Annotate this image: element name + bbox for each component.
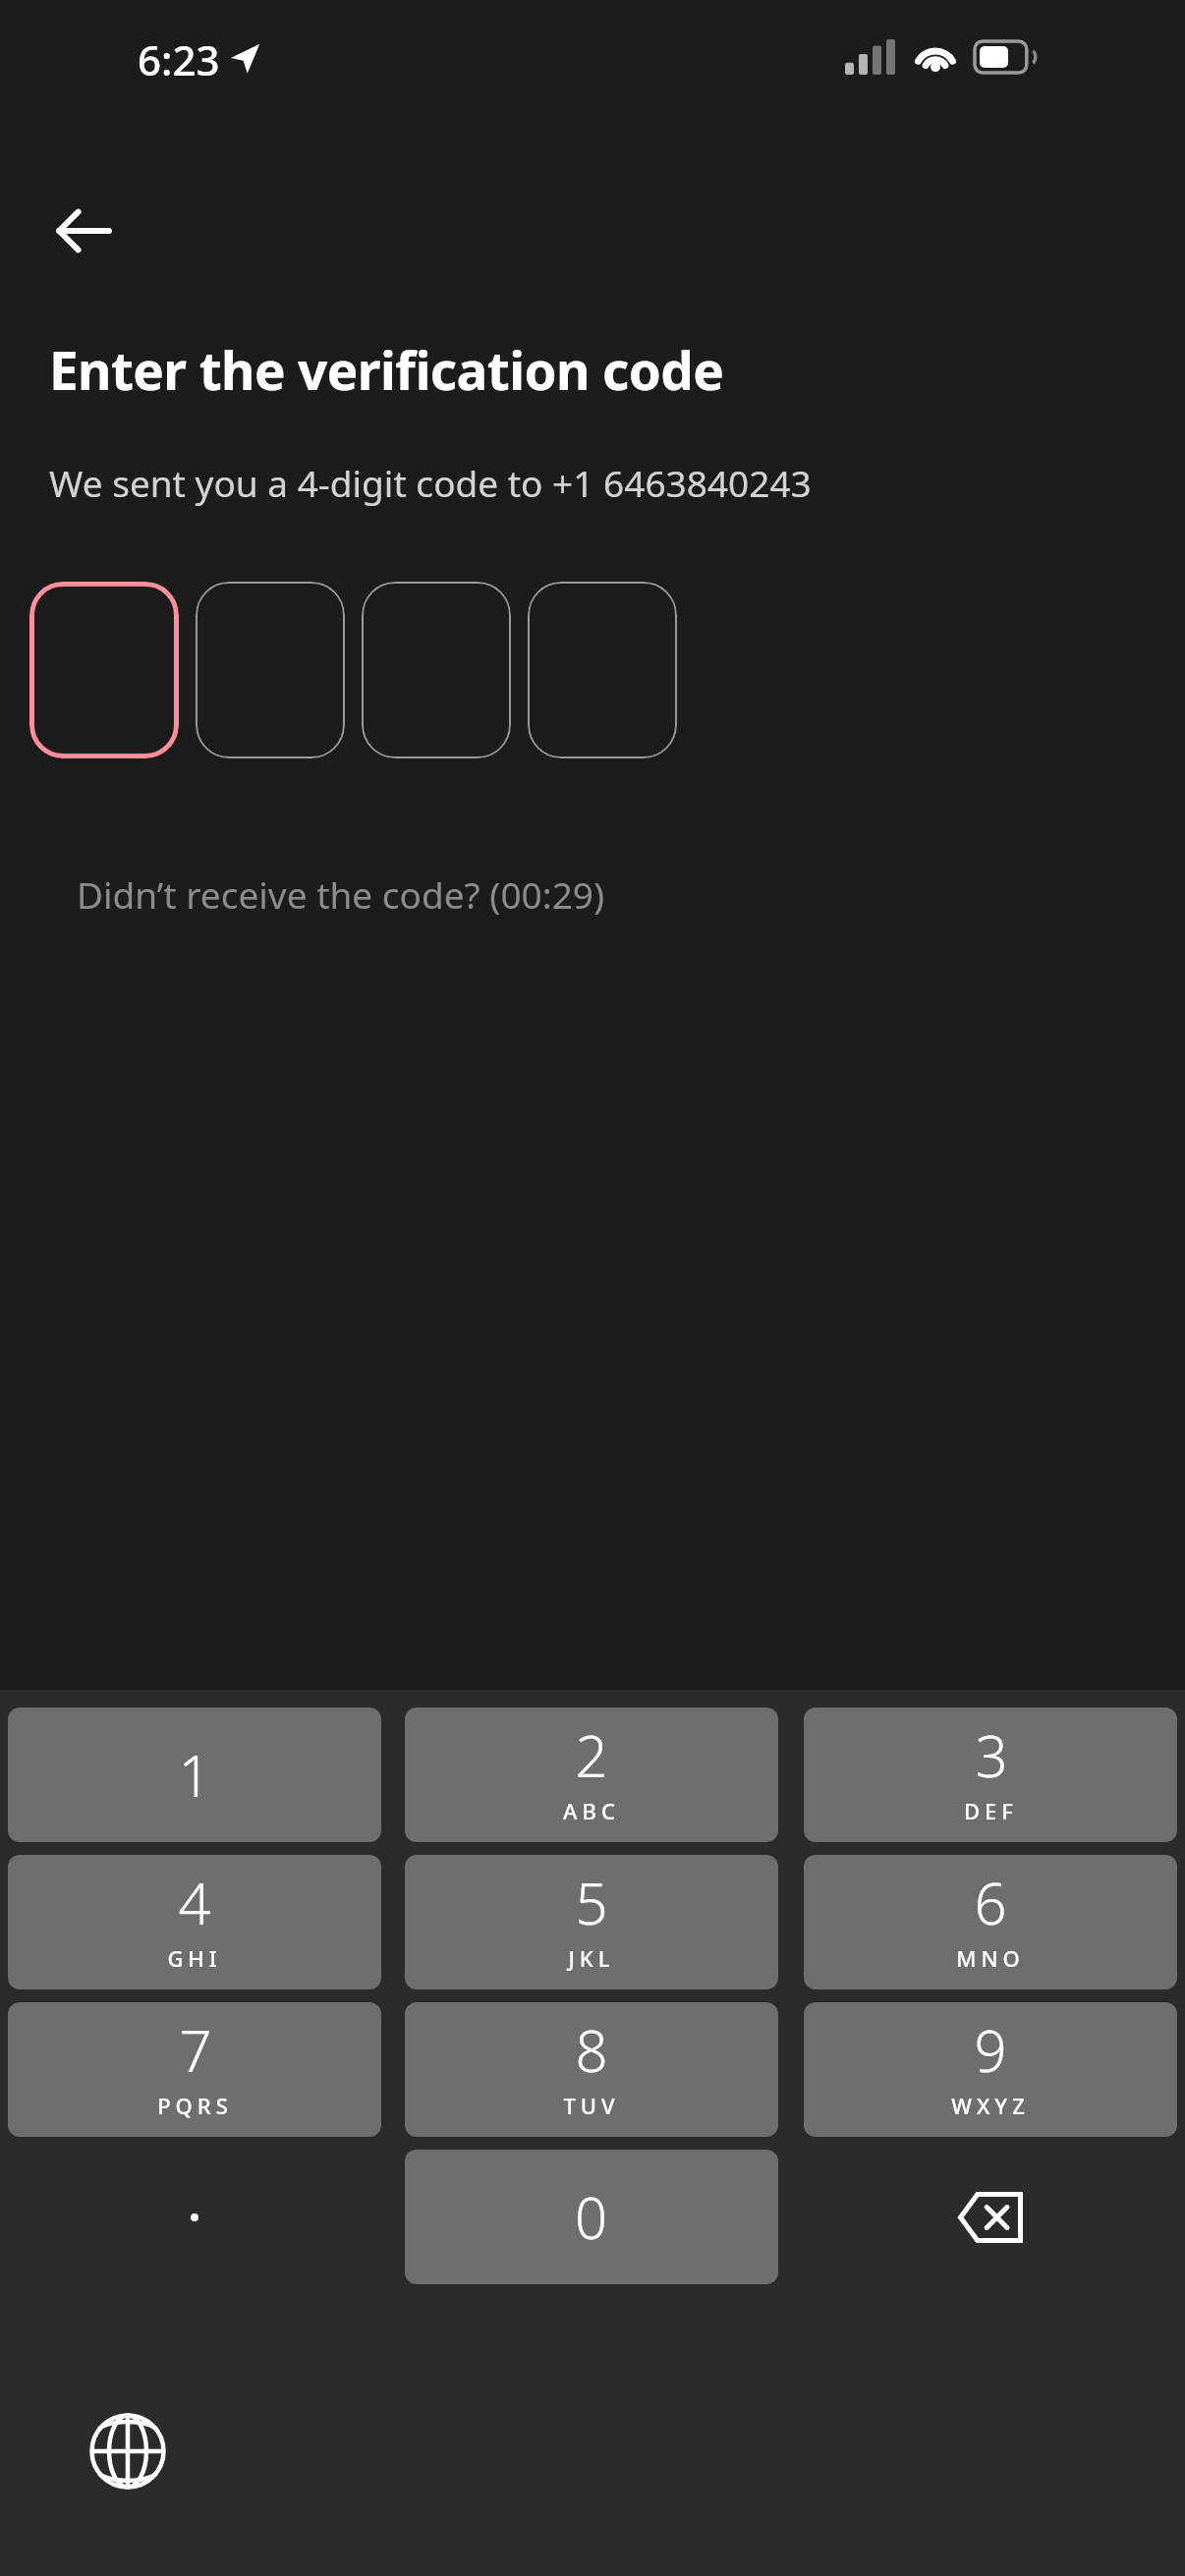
staticText: GHI — [167, 1943, 222, 1973]
staticText: 9 — [974, 2011, 1007, 2089]
button[interactable]: Digit 1 — [29, 582, 179, 758]
button[interactable]: Digit 4 — [528, 582, 677, 758]
button[interactable]: Backspace — [804, 2150, 1177, 2284]
staticText: Didn’t receive the code? (00:29) — [77, 869, 605, 919]
staticText: 1 — [178, 1736, 211, 1814]
staticText: 5 — [575, 1864, 608, 1941]
staticText: 6 — [974, 1864, 1007, 1941]
button[interactable]: 9 — [804, 2002, 1177, 2137]
button[interactable] — [8, 2150, 381, 2284]
staticText: 6:23 — [138, 31, 220, 87]
button[interactable]: Digit 2 — [196, 582, 345, 758]
staticText: 7 — [179, 2011, 212, 2089]
staticText: We sent you a 4-digit code to +1 6463840… — [49, 458, 812, 507]
staticText: DEF — [964, 1796, 1018, 1825]
staticText: PQRS — [157, 2091, 233, 2120]
staticText: 2 — [575, 1716, 608, 1794]
button[interactable]: Change language — [71, 2394, 185, 2508]
button[interactable]: 1 — [8, 1708, 381, 1842]
staticText: TUV — [563, 2091, 620, 2120]
staticText: ABC — [563, 1796, 620, 1825]
button[interactable]: 7 — [8, 2002, 381, 2137]
button[interactable]: 2 — [405, 1708, 778, 1842]
staticText: 4 — [178, 1864, 211, 1941]
button[interactable]: Didn’t receive the code? (00:29) — [77, 869, 605, 919]
staticText: WXYZ — [951, 2091, 1030, 2120]
staticText: JKL — [568, 1943, 615, 1973]
button[interactable]: Digit 3 — [362, 582, 511, 758]
staticText: Enter the verification code — [49, 334, 724, 405]
staticText: MNO — [956, 1943, 1025, 1973]
button[interactable]: 0 — [405, 2150, 778, 2284]
staticText: 3 — [975, 1716, 1008, 1794]
button[interactable]: 8 — [405, 2002, 778, 2137]
button[interactable]: 5 — [405, 1855, 778, 1989]
staticText: 8 — [575, 2011, 608, 2089]
button[interactable]: 4 — [8, 1855, 381, 1989]
button[interactable]: 6 — [804, 1855, 1177, 1989]
staticText: 0 — [575, 2178, 608, 2256]
button[interactable]: Back — [36, 184, 131, 278]
button[interactable]: 3 — [804, 1708, 1177, 1842]
